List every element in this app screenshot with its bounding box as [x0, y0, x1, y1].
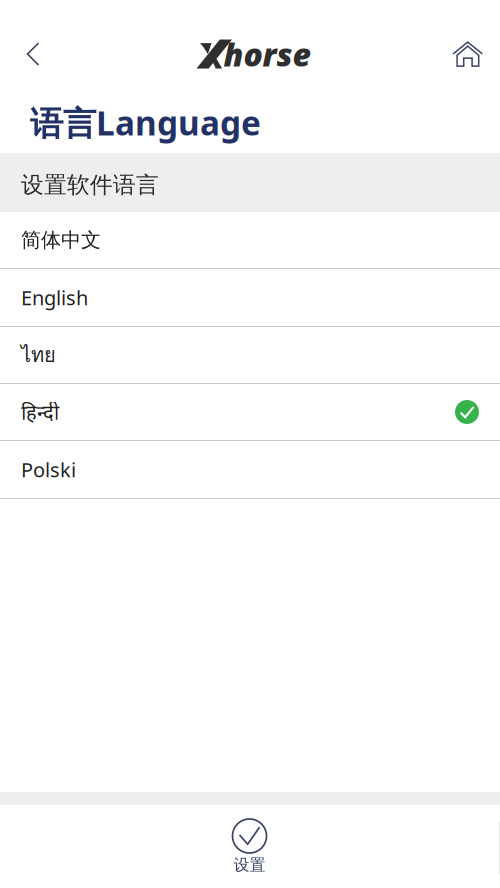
button[interactable]: 简体中文 [0, 212, 500, 268]
button[interactable]: English [0, 269, 500, 326]
button[interactable]: Polski [0, 441, 500, 498]
staticText: English [21, 284, 88, 311]
staticText: 设置软件语言 [21, 171, 159, 199]
staticText: 设置 [233, 855, 265, 875]
button[interactable]: Home [436, 16, 500, 92]
button[interactable]: Back [0, 16, 66, 92]
staticText: horse [223, 33, 311, 75]
button[interactable]: 设置 [0, 805, 499, 888]
button[interactable]: ไทย [0, 327, 500, 383]
staticText: हिन्दी [21, 399, 59, 425]
button[interactable]: हिन्दी [0, 384, 500, 440]
staticText: ไทย [21, 339, 56, 370]
staticText: Polski [21, 456, 76, 483]
staticText: 简体中文 [21, 228, 101, 252]
staticText: 语言Language [30, 100, 261, 145]
